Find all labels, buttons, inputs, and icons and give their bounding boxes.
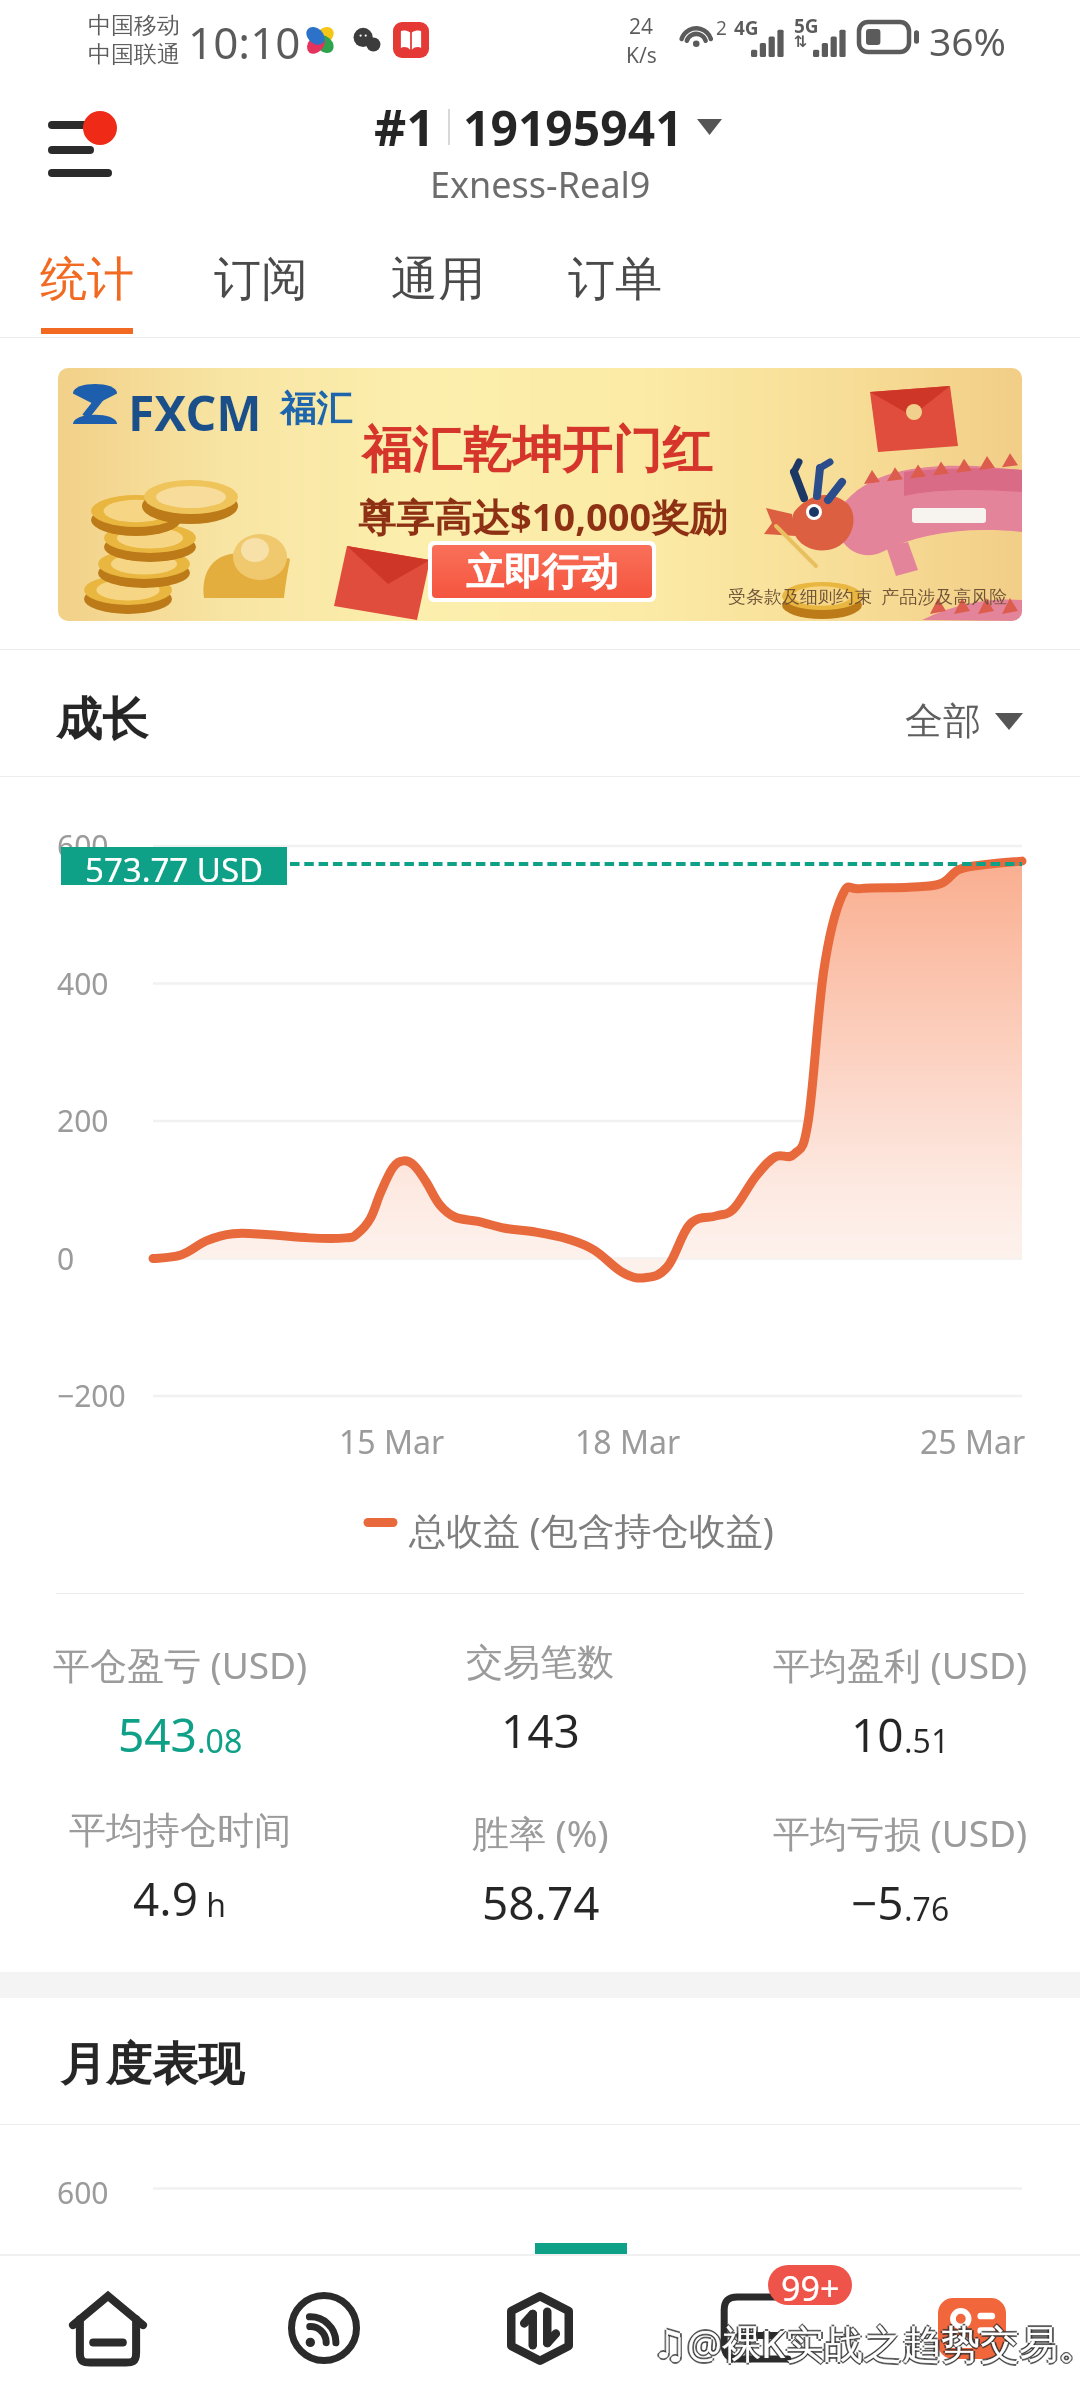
staticText: 24 bbox=[629, 12, 654, 41]
button[interactable]: FXCM bbox=[58, 368, 1022, 621]
staticText: 573.77 USD bbox=[85, 847, 264, 885]
button[interactable]: Apps bbox=[900, 2256, 1044, 2400]
staticText: 通用 bbox=[391, 250, 485, 309]
staticText: 中国联通 bbox=[88, 40, 180, 69]
staticText: #1 bbox=[374, 93, 435, 161]
staticText: 平均持仓时间 bbox=[69, 1807, 291, 1854]
staticText: 福汇 bbox=[280, 386, 352, 431]
staticText: 福汇乾坤开门红 bbox=[362, 419, 712, 482]
staticText: ♫@裸K实战之趋势交易。 bbox=[652, 2318, 1080, 2371]
staticText: 4.9 bbox=[133, 1867, 198, 1930]
staticText: .08 bbox=[197, 1719, 243, 1763]
staticText: ♫@裸K实战之趋势交易。 bbox=[654, 2316, 1080, 2369]
staticText: .51 bbox=[904, 1719, 950, 1763]
staticText: ♫@裸K实战之趋势交易。 bbox=[652, 2314, 1080, 2367]
button[interactable]: #1 bbox=[374, 93, 722, 161]
staticText: 0 bbox=[57, 1238, 75, 1279]
staticText: 月度表现 bbox=[60, 2036, 244, 2094]
button[interactable]: 立即行动 bbox=[432, 545, 652, 598]
button[interactable]: 订阅 bbox=[203, 236, 319, 342]
button[interactable]: 通用 bbox=[380, 236, 496, 342]
staticText: 600 bbox=[57, 825, 109, 866]
button[interactable]: Home bbox=[36, 2256, 180, 2400]
staticText: ⇅ bbox=[794, 32, 808, 51]
staticText: 18 Mar bbox=[575, 1420, 681, 1464]
button[interactable]: 全部 bbox=[905, 697, 1023, 745]
staticText: 平均亏损 (USD) bbox=[773, 1807, 1028, 1858]
staticText: 143 bbox=[501, 1699, 580, 1762]
button[interactable]: Menu bbox=[36, 106, 120, 190]
staticText: 4G bbox=[734, 15, 759, 41]
staticText: 543 bbox=[118, 1703, 197, 1766]
staticText: 统计 bbox=[40, 250, 134, 309]
staticText: ♫@裸K实战之趋势交易。 bbox=[650, 2316, 1080, 2369]
staticText: ♫@裸K实战之趋势交易。 bbox=[652, 2316, 1080, 2369]
staticText: 订阅 bbox=[214, 250, 308, 309]
staticText: 19195941 bbox=[463, 95, 683, 160]
staticText: 平均盈利 (USD) bbox=[773, 1639, 1028, 1690]
button[interactable]: Messages bbox=[684, 2256, 828, 2400]
staticText: −200 bbox=[57, 1375, 126, 1416]
staticText: 15 Mar bbox=[339, 1420, 445, 1464]
staticText: K/s bbox=[626, 41, 657, 70]
staticText: 尊享高达$10,000奖励 bbox=[358, 490, 728, 542]
staticText: 成长 bbox=[56, 691, 148, 749]
staticText: 5G bbox=[794, 13, 819, 39]
staticText: 平仓盈亏 (USD) bbox=[53, 1639, 308, 1690]
staticText: 400 bbox=[57, 963, 109, 1004]
staticText: 10 bbox=[851, 1703, 904, 1766]
staticText: 总收益 (包含持仓收益) bbox=[409, 1504, 774, 1555]
staticText: −5 bbox=[851, 1871, 904, 1934]
staticText: 交易笔数 bbox=[466, 1639, 614, 1686]
staticText: .76 bbox=[904, 1887, 950, 1931]
staticText: 2 bbox=[716, 15, 727, 41]
staticText: Exness-Real9 bbox=[430, 160, 651, 209]
staticText: 10:10 bbox=[188, 12, 301, 72]
staticText: FXCM bbox=[128, 380, 262, 445]
staticText: 中国移动 bbox=[88, 11, 180, 40]
staticText: 受条款及细则约束 产品涉及高风险 bbox=[728, 584, 1008, 609]
staticText: 58.74 bbox=[482, 1871, 600, 1934]
button[interactable]: Trade bbox=[468, 2256, 612, 2400]
staticText: 36% bbox=[929, 14, 1007, 67]
staticText: 胜率 (%) bbox=[472, 1807, 609, 1858]
staticText: 25 Mar bbox=[920, 1420, 1026, 1464]
staticText: h bbox=[198, 1883, 227, 1927]
button[interactable]: 统计 bbox=[29, 236, 145, 342]
button[interactable]: 订单 bbox=[557, 236, 673, 342]
staticText: 200 bbox=[57, 1100, 109, 1141]
button[interactable]: Signals bbox=[252, 2256, 396, 2400]
staticText: 99+ bbox=[781, 2265, 840, 2305]
staticText: 订单 bbox=[568, 250, 662, 309]
staticText: 600 bbox=[57, 2172, 109, 2213]
staticText: 立即行动 bbox=[466, 548, 618, 596]
staticText: 全部 bbox=[905, 697, 981, 745]
